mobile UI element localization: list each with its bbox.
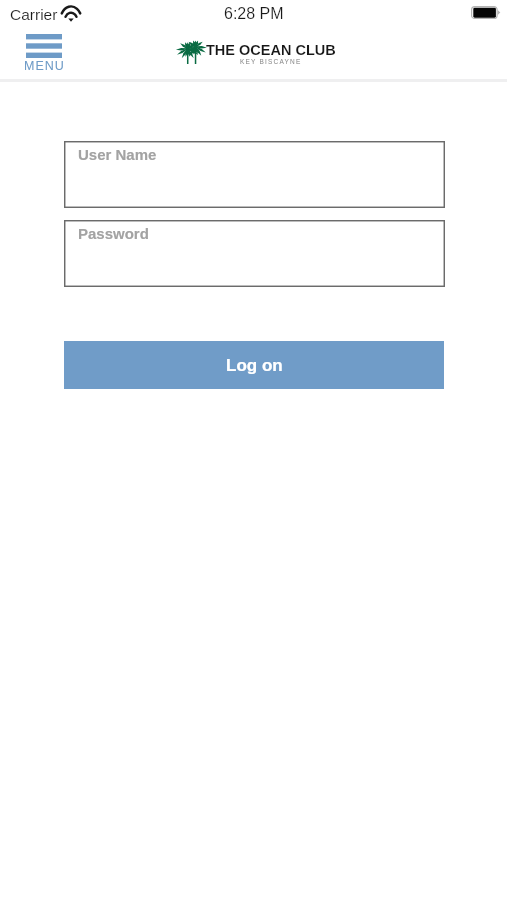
staticText: User Name [78, 146, 157, 163]
staticText: Password [78, 225, 149, 242]
staticText: THE OCEAN CLUB [206, 42, 336, 58]
staticText: Carrier [10, 6, 58, 23]
button[interactable]: Menu [24, 34, 65, 73]
button[interactable]: Log on [64, 341, 444, 389]
button[interactable]: Password [64, 220, 445, 287]
button[interactable]: User Name [64, 141, 445, 208]
staticText: KEY BISCAYNE [240, 58, 302, 65]
staticText: Log on [226, 356, 283, 375]
staticText: 6:28 PM [224, 5, 284, 23]
staticText: MENU [24, 59, 65, 73]
